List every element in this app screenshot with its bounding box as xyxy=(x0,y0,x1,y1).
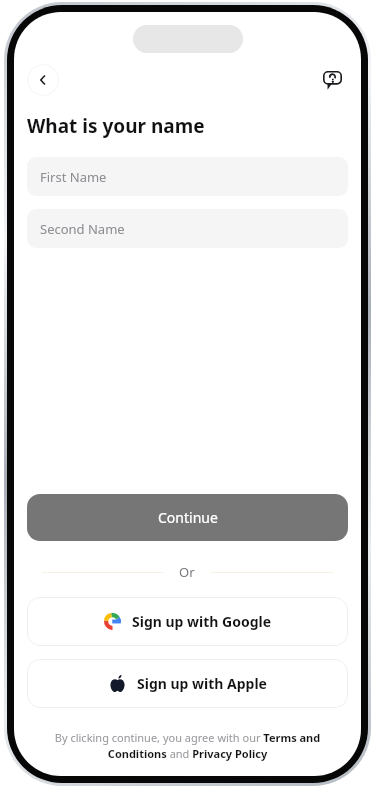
staticText: Continue xyxy=(158,508,218,527)
button[interactable]: Second Name xyxy=(27,209,348,248)
staticText: First Name xyxy=(40,168,107,186)
button[interactable]: Sign up with Apple xyxy=(27,659,348,708)
button[interactable]: First Name xyxy=(27,157,348,196)
button[interactable]: Back xyxy=(27,64,59,96)
button[interactable]: Help xyxy=(316,64,348,96)
button[interactable]: Continue xyxy=(27,494,348,541)
staticText: Sign up with Google xyxy=(132,612,272,631)
staticText: Sign up with Apple xyxy=(137,674,267,693)
staticText: Second Name xyxy=(40,220,125,238)
button[interactable]: By clicking continue, you agree with our… xyxy=(48,730,327,762)
staticText: What is your name xyxy=(27,113,205,139)
button[interactable]: Sign up with Google xyxy=(27,597,348,646)
staticText: Or xyxy=(179,563,195,581)
staticText: By clicking continue, you agree with our… xyxy=(48,730,327,762)
